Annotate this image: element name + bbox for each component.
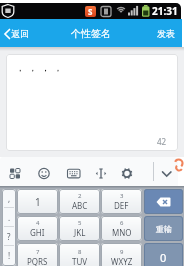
staticText: !	[8, 250, 11, 261]
staticText: ?	[7, 231, 11, 242]
staticText: 返回	[11, 28, 29, 39]
button[interactable]	[144, 189, 183, 214]
button[interactable]: 返回	[0, 28, 29, 39]
staticText: 2	[78, 192, 82, 200]
staticText: TUV	[72, 256, 88, 266]
button[interactable]: ,	[2, 189, 16, 266]
button[interactable]: ， ， ， ，	[6, 54, 178, 151]
staticText: JKL	[74, 227, 86, 238]
staticText: ABC	[72, 200, 88, 211]
staticText: MNO	[112, 227, 132, 238]
button[interactable]	[0, 157, 29, 186]
button[interactable]: 2	[59, 189, 100, 214]
button[interactable]: 8	[59, 243, 100, 266]
staticText: 5	[78, 219, 82, 227]
staticText: .	[8, 212, 11, 223]
button[interactable]: 6	[101, 216, 142, 241]
staticText: 3	[120, 192, 124, 200]
staticText: 9	[120, 248, 124, 256]
staticText: ,	[8, 193, 11, 204]
button[interactable]	[118, 157, 148, 186]
staticText: PQRS	[27, 256, 48, 266]
button[interactable]: 4	[17, 216, 58, 241]
staticText: 42	[157, 136, 167, 147]
staticText: 7	[36, 248, 40, 256]
staticText: 4	[36, 219, 40, 227]
staticText: 6	[120, 219, 124, 227]
button[interactable]	[58, 157, 88, 186]
staticText: 发表	[157, 28, 175, 39]
button[interactable]: 1	[17, 189, 58, 214]
button[interactable]: 9	[101, 243, 142, 266]
staticText: ， ， ， ，	[15, 60, 63, 74]
staticText: 21:31	[152, 4, 178, 18]
button[interactable]	[29, 157, 58, 186]
button[interactable]: 3	[101, 189, 142, 214]
button[interactable]: 重输	[144, 216, 183, 241]
button[interactable]: 5	[59, 216, 100, 241]
staticText: DEF	[114, 200, 129, 211]
button[interactable]	[148, 157, 178, 186]
button[interactable]: 发表	[157, 28, 182, 39]
staticText: GHI	[30, 227, 45, 238]
button[interactable]: 7	[17, 243, 58, 266]
staticText: WXYZ	[111, 256, 133, 266]
button[interactable]	[88, 157, 118, 186]
staticText: 重输	[156, 224, 172, 234]
staticText: 1	[35, 195, 41, 209]
staticText: S	[88, 6, 93, 17]
button[interactable]: 0	[144, 243, 183, 266]
staticText: 0	[160, 250, 167, 265]
staticText: 8	[78, 248, 82, 256]
staticText: 个性签名	[71, 27, 111, 40]
